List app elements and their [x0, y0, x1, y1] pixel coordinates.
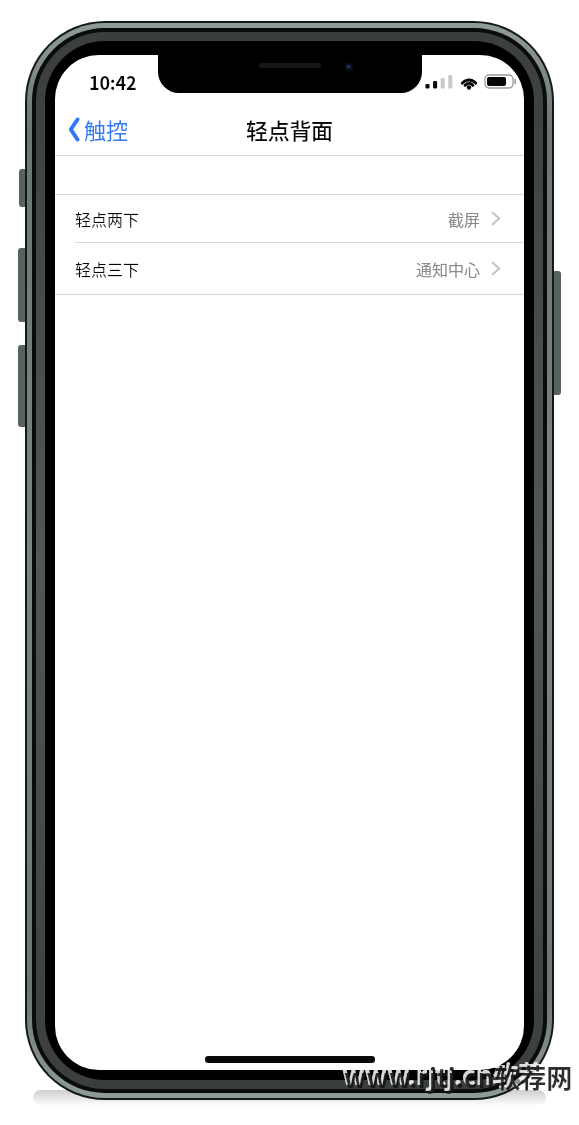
- staticText: www.rjtj.cn软荐网: [344, 1058, 573, 1096]
- staticText: 通知中心: [416, 257, 481, 280]
- button[interactable]: 轻点三下: [55, 243, 524, 293]
- staticText: 截屏: [448, 207, 481, 230]
- button[interactable]: 轻点两下: [55, 194, 524, 242]
- staticText: 轻点三下: [75, 257, 140, 280]
- staticText: 10:42: [89, 69, 137, 95]
- staticText: 轻点背面: [246, 113, 333, 145]
- button[interactable]: 触控: [65, 113, 129, 145]
- staticText: www.rjtj.cn软荐网: [342, 1055, 571, 1093]
- staticText: 轻点两下: [75, 207, 140, 230]
- staticText: 触控: [84, 113, 129, 145]
